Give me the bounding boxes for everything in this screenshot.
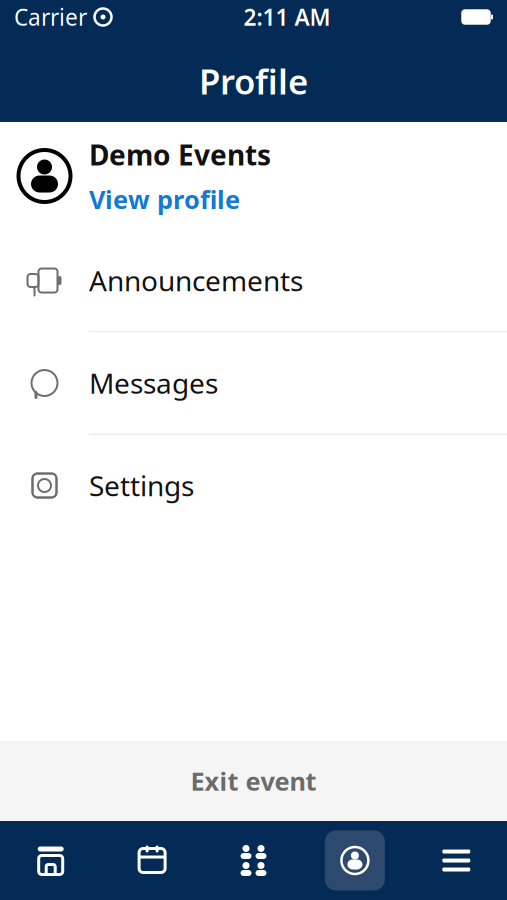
button[interactable]: Exit event: [0, 741, 507, 821]
staticText: Demo Events: [89, 136, 271, 173]
button[interactable]: Announcements: [0, 230, 507, 331]
button[interactable]: More: [406, 821, 507, 900]
button[interactable]: Schedule: [101, 821, 203, 900]
staticText: View profile: [89, 182, 240, 216]
staticText: Exit event: [190, 764, 316, 798]
button[interactable]: Profile: [304, 821, 406, 900]
staticText: Messages: [89, 364, 218, 402]
button[interactable]: Messages: [0, 332, 507, 433]
staticText: Settings: [89, 467, 194, 504]
button[interactable]: Demo Events: [0, 122, 507, 230]
button[interactable]: Home: [0, 821, 101, 900]
staticText: Carrier: [14, 2, 87, 32]
button[interactable]: Attendees: [203, 821, 304, 900]
button[interactable]: Settings: [0, 435, 507, 536]
staticText: 2:11 AM: [243, 2, 330, 32]
staticText: Profile: [199, 58, 308, 104]
staticText: Announcements: [89, 262, 303, 299]
